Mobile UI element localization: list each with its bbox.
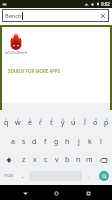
staticText: p — [104, 118, 109, 128]
button[interactable]: b — [62, 151, 73, 169]
staticText: o — [93, 118, 98, 128]
staticText: b — [65, 155, 70, 165]
button[interactable]: x — [29, 151, 40, 169]
staticText: n — [76, 155, 81, 165]
button[interactable]: Backspace — [95, 151, 112, 169]
staticText: w — [15, 118, 21, 128]
button[interactable]: m — [84, 151, 95, 169]
staticText: d — [32, 137, 37, 147]
staticText: x — [33, 155, 37, 165]
staticText: a — [11, 137, 15, 147]
button[interactable]: h — [62, 133, 73, 151]
button[interactable]: 1 — [0, 114, 12, 132]
button[interactable]: z — [18, 151, 29, 169]
staticText: q — [4, 118, 9, 128]
button[interactable]: k — [84, 133, 95, 151]
staticText: t — [50, 118, 53, 128]
button[interactable]: 2 — [12, 114, 24, 132]
button[interactable]: 7 — [68, 114, 79, 132]
button[interactable]: s — [18, 133, 29, 151]
staticText: Bench — [5, 12, 22, 20]
staticText: 7 — [73, 118, 75, 122]
staticText: z — [22, 155, 26, 165]
button[interactable]: 9 — [90, 114, 101, 132]
button[interactable]: ?123 — [0, 167, 17, 185]
button[interactable]: c — [40, 151, 51, 169]
staticText: 5 — [51, 118, 53, 122]
staticText: m — [86, 155, 93, 165]
staticText: y — [61, 118, 65, 128]
staticText: 3 — [29, 118, 31, 122]
button[interactable]: d — [29, 133, 40, 151]
button[interactable]: SEARCH FOR MORE APPS — [8, 68, 60, 74]
staticText: e — [28, 118, 32, 128]
staticText: s — [22, 137, 26, 147]
staticText: . — [88, 172, 90, 180]
staticText: 0 — [106, 118, 108, 122]
staticText: v — [55, 155, 59, 165]
button[interactable]: . — [83, 167, 94, 185]
button[interactable]: Recents — [81, 186, 95, 200]
staticText: 2 — [17, 118, 19, 122]
staticText: l — [100, 137, 102, 147]
staticText: k — [88, 137, 92, 147]
staticText: JaTaTa Bench — [5, 50, 27, 55]
button[interactable]: Shift — [0, 151, 18, 169]
staticText: SEARCH FOR MORE APPS — [8, 68, 60, 74]
staticText: j — [78, 137, 80, 147]
staticText: r — [39, 118, 42, 128]
button[interactable]: 3 — [24, 114, 35, 132]
button[interactable]: 6 — [57, 114, 68, 132]
button[interactable]: 8 — [79, 114, 90, 132]
button[interactable]: Bench — [2, 9, 109, 22]
staticText: , — [22, 172, 24, 180]
button[interactable]: Home — [49, 186, 63, 200]
staticText: u — [71, 118, 76, 128]
button[interactable]: JaTaTa Bench — [3, 32, 28, 55]
staticText: g — [54, 137, 59, 147]
staticText: 1 — [5, 118, 7, 122]
staticText: 4 — [40, 118, 42, 122]
staticText: ?123 — [4, 173, 14, 179]
staticText: 8 — [84, 118, 86, 122]
button[interactable]: , — [17, 167, 28, 185]
button[interactable]: Back — [18, 186, 32, 200]
staticText: 9:02 — [101, 1, 110, 7]
button[interactable]: g — [51, 133, 62, 151]
button[interactable]: j — [73, 133, 84, 151]
button[interactable]: l — [95, 133, 106, 151]
button[interactable]: Search — [94, 167, 112, 185]
staticText: 6 — [62, 118, 64, 122]
button[interactable]: 5 — [46, 114, 57, 132]
button[interactable]: Clear search — [97, 10, 108, 21]
button[interactable]: 0 — [101, 114, 112, 132]
button[interactable]: a — [7, 133, 18, 151]
button[interactable]: v — [51, 151, 62, 169]
button[interactable]: 4 — [35, 114, 46, 132]
staticText: f — [44, 137, 47, 147]
staticText: i — [84, 118, 86, 128]
button[interactable]: n — [73, 151, 84, 169]
staticText: h — [65, 137, 70, 147]
staticText: c — [44, 155, 48, 165]
button[interactable]: f — [40, 133, 51, 151]
staticText: 9 — [95, 118, 97, 122]
